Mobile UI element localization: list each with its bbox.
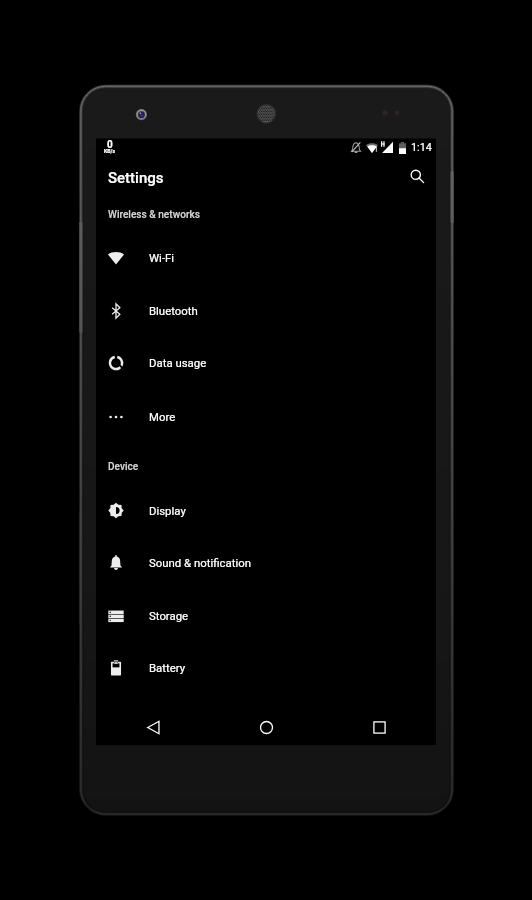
button[interactable]: Home (210, 709, 323, 745)
button[interactable]: Battery (96, 642, 436, 694)
staticText: Storage (149, 609, 189, 622)
staticText: Sound & notification (149, 556, 252, 569)
button[interactable]: Sound & notification (96, 537, 436, 589)
staticText: Wireless & networks (108, 209, 200, 221)
button[interactable]: Recent apps (323, 709, 436, 745)
button[interactable]: Display (96, 485, 436, 537)
button[interactable]: Data usage (96, 337, 436, 389)
staticText: Settings (108, 169, 164, 187)
button[interactable]: Back (96, 709, 210, 745)
button[interactable]: Bluetooth (96, 285, 436, 337)
staticText: KB/s (104, 148, 116, 154)
staticText: Wi-Fi (149, 251, 175, 264)
staticText: Battery (149, 661, 186, 674)
staticText: Bluetooth (149, 304, 198, 317)
button[interactable]: Search (404, 163, 430, 189)
staticText: Device (108, 461, 139, 473)
button[interactable]: More (96, 391, 436, 443)
staticText: Display (149, 504, 186, 517)
staticText: More (149, 410, 176, 423)
button[interactable]: Storage (96, 590, 436, 642)
staticText: Data usage (149, 356, 207, 369)
staticText: 1:14 (411, 141, 432, 154)
button[interactable]: Wi-Fi (96, 232, 436, 284)
staticText: 0 (107, 139, 113, 151)
